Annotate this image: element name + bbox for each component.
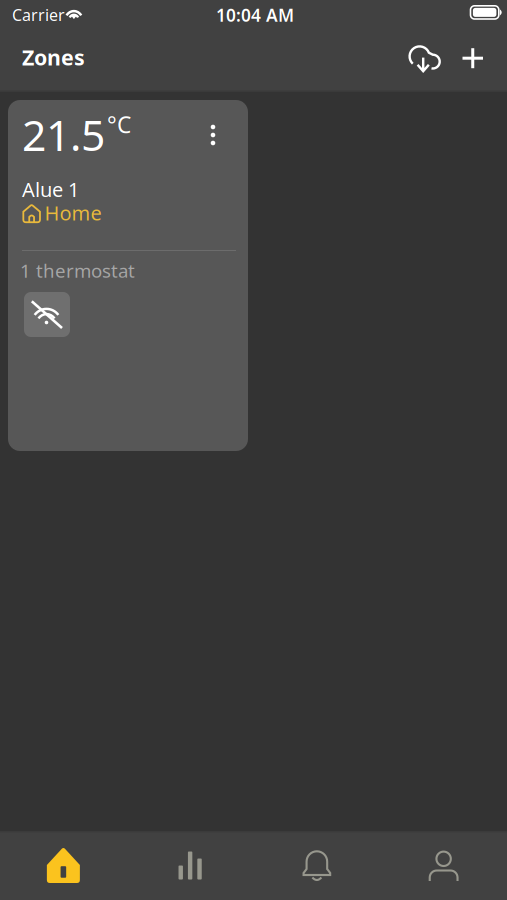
staticText: Home bbox=[44, 199, 101, 226]
staticText: 21.5 bbox=[22, 106, 105, 163]
button[interactable]: Add zone bbox=[451, 36, 495, 80]
button[interactable]: Profile bbox=[380, 831, 507, 900]
button[interactable]: Home bbox=[0, 831, 127, 900]
button[interactable]: Statistics bbox=[127, 831, 254, 900]
staticText: °C bbox=[107, 109, 131, 140]
button[interactable]: Notifications bbox=[253, 831, 380, 900]
staticText: Zones bbox=[22, 43, 85, 71]
staticText: 1 thermostat bbox=[20, 258, 135, 283]
button[interactable]: Download bbox=[401, 39, 447, 83]
staticText: Carrier bbox=[12, 4, 65, 25]
staticText: Alue 1 bbox=[22, 176, 79, 203]
staticText: 10:04 AM bbox=[216, 3, 294, 26]
button[interactable]: 21.5 bbox=[8, 100, 248, 451]
